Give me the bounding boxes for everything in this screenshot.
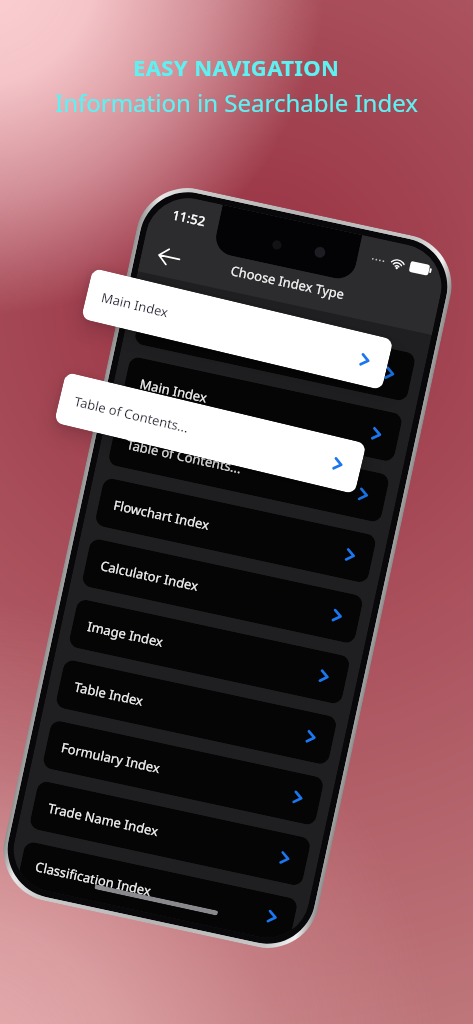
staticText: Alphabetical Index: [151, 314, 266, 356]
staticText: Main Index: [138, 375, 209, 407]
staticText: 11:52: [171, 206, 208, 230]
button[interactable]: Main Index: [120, 356, 403, 463]
button[interactable]: Image Index: [68, 598, 351, 705]
staticText: Table of Contents...: [125, 435, 243, 477]
button[interactable]: Table of Contents...: [54, 372, 366, 494]
staticText: Choose Index Type: [229, 261, 346, 303]
staticText: EASY NAVIGATION: [133, 52, 340, 82]
staticText: Main Index: [99, 288, 171, 321]
staticText: Calculator Index: [99, 556, 200, 595]
button[interactable]: Back: [148, 236, 189, 277]
staticText: Formulary Index: [59, 738, 162, 777]
staticText: Table Index: [73, 678, 145, 710]
button[interactable]: Main Index: [81, 268, 393, 390]
staticText: Image Index: [86, 617, 165, 651]
button[interactable]: Calculator Index: [81, 537, 364, 644]
button[interactable]: Classification Index: [16, 840, 298, 943]
button[interactable]: Formulary Index: [42, 719, 325, 826]
button[interactable]: Trade Name Index: [29, 780, 312, 887]
staticText: Flowchart Index: [112, 496, 211, 534]
button[interactable]: Table Index: [55, 659, 338, 766]
staticText: Information in Searchable Index: [55, 86, 418, 119]
button[interactable]: Table of Contents...: [107, 416, 390, 523]
staticText: Classification Index: [34, 857, 153, 900]
staticText: Trade Name Index: [46, 799, 161, 840]
staticText: Table of Contents...: [72, 392, 190, 437]
button[interactable]: Alphabetical Index: [133, 295, 416, 402]
button[interactable]: Flowchart Index: [94, 477, 377, 584]
